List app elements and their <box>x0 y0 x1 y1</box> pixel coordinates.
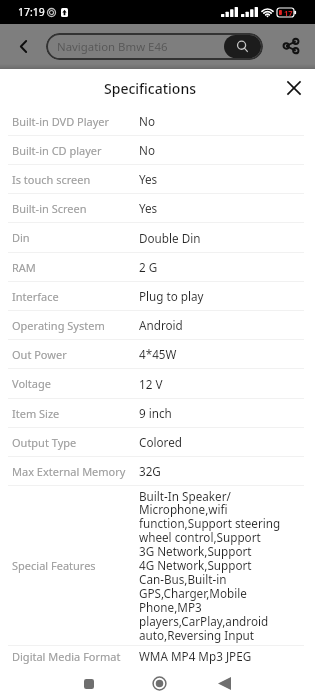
staticText: Interface <box>12 289 59 304</box>
button[interactable]: Built-in Screen <box>0 194 315 223</box>
button[interactable]: Digital Media Format <box>0 646 315 666</box>
button[interactable]: Share <box>271 24 315 68</box>
button[interactable]: Home <box>142 671 177 696</box>
button[interactable]: Item Size <box>0 399 315 428</box>
button[interactable]: Built-in DVD Player <box>0 107 315 136</box>
button[interactable]: Back <box>0 24 46 68</box>
button[interactable]: Is touch screen <box>0 165 315 194</box>
button[interactable]: Search <box>224 35 261 58</box>
staticText: Output Type <box>12 435 77 450</box>
button[interactable]: Operating System <box>0 311 315 340</box>
staticText: Digital Media Format <box>12 649 121 664</box>
staticText: Navigation Bmw E46 <box>57 39 168 55</box>
staticText: Android <box>139 317 183 333</box>
staticText: 2 G <box>139 259 158 275</box>
button[interactable]: Back <box>207 671 242 696</box>
staticText: Built-in CD player <box>12 143 102 158</box>
button[interactable]: Navigation Bmw E46 <box>46 33 263 60</box>
staticText: RAM <box>12 260 36 275</box>
button[interactable]: Interface <box>0 282 315 311</box>
staticText: Out Power <box>12 347 67 362</box>
staticText: 17:19 <box>18 5 45 19</box>
staticText: 17 <box>284 8 293 17</box>
button[interactable]: Special Features <box>0 486 315 646</box>
staticText: Max External Memory <box>12 464 126 479</box>
button[interactable]: Recents <box>71 671 106 696</box>
staticText: 9 inch <box>139 405 172 421</box>
staticText: Operating System <box>12 318 105 333</box>
staticText: 32G <box>139 463 161 479</box>
staticText: Yes <box>139 200 158 216</box>
staticText: Special Features <box>12 558 96 573</box>
staticText: WMA MP4 Mp3 JPEG <box>139 648 252 664</box>
button[interactable]: Din <box>0 223 315 253</box>
staticText: Item Size <box>12 406 60 421</box>
button[interactable]: Max External Memory <box>0 457 315 486</box>
staticText: Colored <box>139 434 182 450</box>
staticText: 4*45W <box>139 346 177 362</box>
staticText: Built-in Screen <box>12 201 87 216</box>
button[interactable]: RAM <box>0 253 315 282</box>
button[interactable]: Out Power <box>0 340 315 369</box>
button[interactable]: Close <box>280 74 308 102</box>
staticText: Specifications <box>104 79 196 98</box>
staticText: Voltage <box>12 376 51 391</box>
button[interactable]: Output Type <box>0 428 315 457</box>
staticText: Is touch screen <box>12 172 91 187</box>
button[interactable]: Built-in CD player <box>0 136 315 165</box>
staticText: Built-In Speaker/ Microphone,wifi functi… <box>139 488 281 643</box>
staticText: Din <box>12 230 30 245</box>
staticText: Double Din <box>139 230 201 246</box>
staticText: Plug to play <box>139 288 204 304</box>
staticText: No <box>139 142 155 158</box>
button[interactable]: Voltage <box>0 369 315 399</box>
staticText: 12 V <box>139 376 163 392</box>
staticText: No <box>139 113 155 129</box>
staticText: Yes <box>139 171 158 187</box>
staticText: Built-in DVD Player <box>12 114 110 129</box>
